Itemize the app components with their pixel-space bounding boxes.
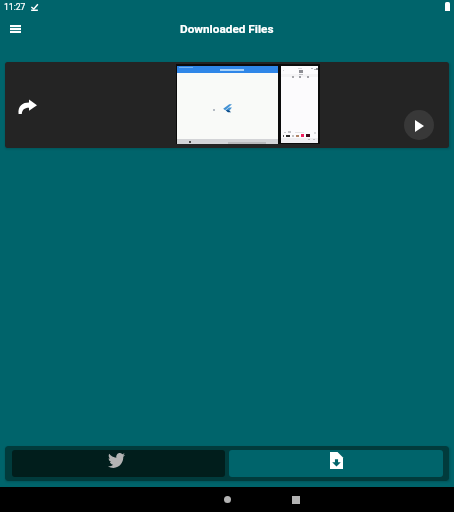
button[interactable]: Menu	[5, 18, 26, 39]
staticText: 11:27	[4, 2, 26, 12]
button[interactable]: Play	[404, 110, 434, 140]
button[interactable]: Share	[15, 94, 39, 118]
button[interactable]: Downloads	[229, 450, 443, 477]
button[interactable]: Share	[5, 62, 449, 148]
staticText: Downloaded Files	[180, 22, 274, 36]
button[interactable]: Home	[214, 487, 240, 512]
button[interactable]: Twitter	[12, 450, 225, 477]
button[interactable]: Recents	[283, 487, 309, 512]
